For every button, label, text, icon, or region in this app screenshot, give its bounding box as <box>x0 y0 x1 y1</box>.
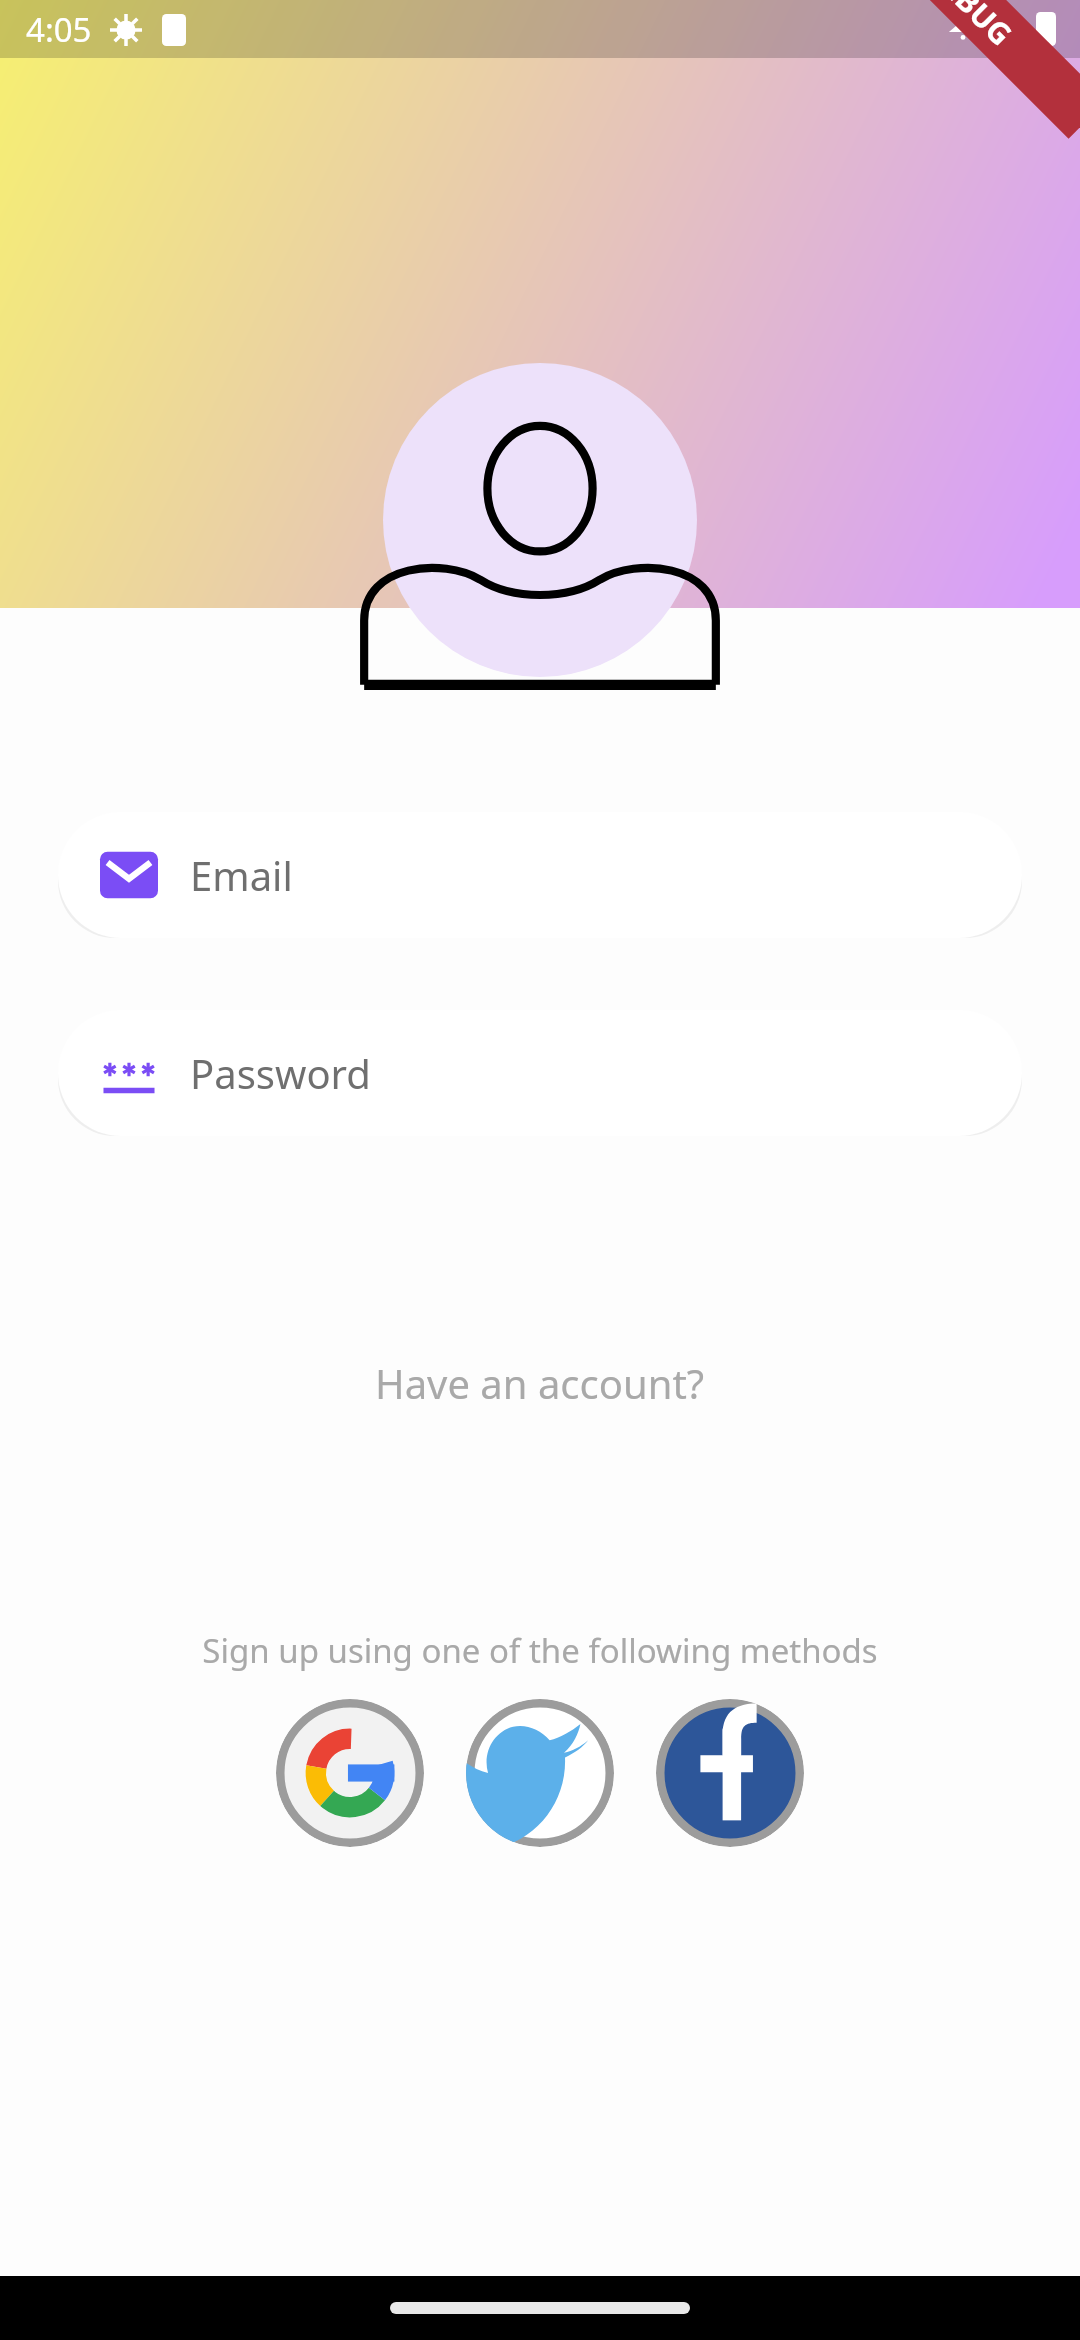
other: Profile photo <box>383 363 697 677</box>
button[interactable]: Sign up with Facebook <box>656 1699 804 1847</box>
button[interactable]: Home <box>390 2302 690 2314</box>
staticText: DEBUG <box>919 0 1022 55</box>
staticText: Email <box>190 848 293 902</box>
button[interactable]: Email <box>58 812 1022 938</box>
button[interactable]: Have an account? <box>0 1346 1080 1420</box>
button[interactable]: Sign up with Twitter <box>466 1699 614 1847</box>
button[interactable]: Sign up with Google <box>276 1699 424 1847</box>
staticText: Password <box>190 1046 371 1100</box>
staticText: 4:05 <box>26 7 92 52</box>
button[interactable]: Password <box>58 1010 1022 1136</box>
staticText: Have an account? <box>375 1356 705 1410</box>
staticText: Sign up using one of the following metho… <box>0 1628 1080 1673</box>
